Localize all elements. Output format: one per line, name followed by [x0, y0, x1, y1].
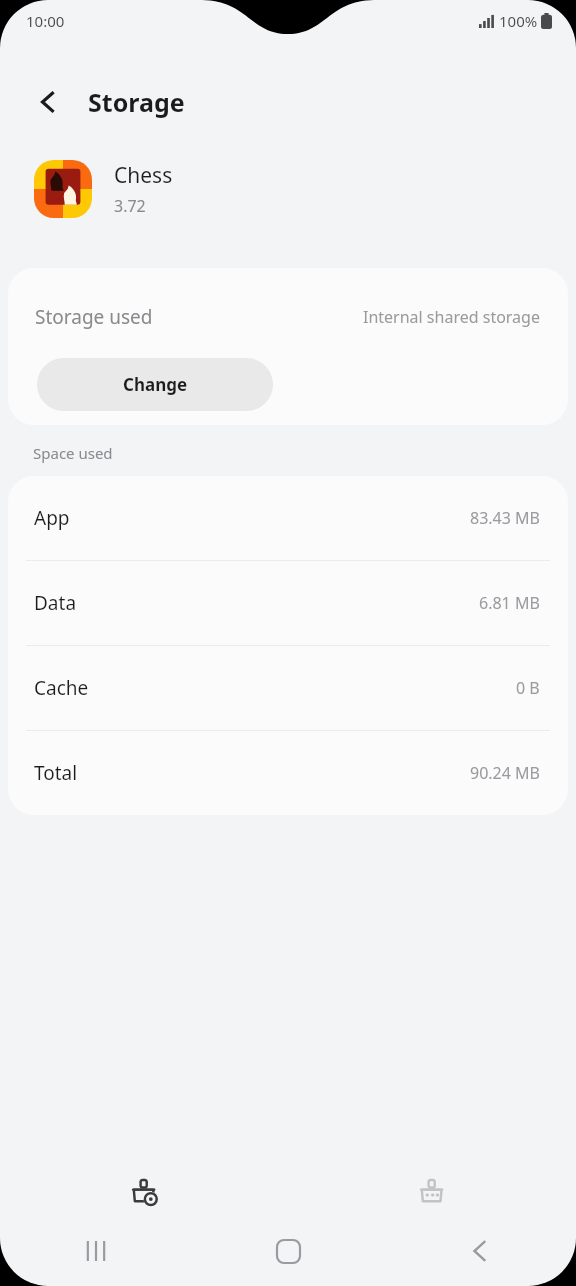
staticText: 100% [499, 11, 538, 31]
staticText: Cache [34, 675, 89, 701]
staticText: 90.24 MB [470, 762, 540, 784]
button[interactable]: Recents [0, 1216, 192, 1286]
button[interactable]: Cache [8, 646, 568, 730]
button[interactable]: Back [384, 1216, 576, 1286]
staticText: Total [34, 760, 78, 786]
button[interactable]: Home [192, 1216, 384, 1286]
staticText: Data [34, 590, 77, 616]
staticText: 0 B [516, 677, 540, 699]
button[interactable]: Clear data [0, 1176, 288, 1224]
button[interactable]: Data [8, 561, 568, 645]
staticText: Internal shared storage [363, 306, 540, 328]
staticText: Chess [114, 161, 173, 190]
button[interactable]: Change [37, 358, 273, 411]
staticText: 83.43 MB [470, 507, 540, 529]
staticText: Storage used [35, 304, 153, 330]
staticText: Storage [88, 85, 185, 119]
button[interactable]: Back [26, 80, 70, 124]
button[interactable]: Total [8, 731, 568, 815]
staticText: Change [123, 373, 188, 396]
staticText: 3.72 [114, 195, 146, 217]
staticText: 10:00 [26, 11, 65, 31]
staticText: Space used [33, 443, 113, 463]
button[interactable]: Clear cache [288, 1176, 576, 1224]
staticText: 6.81 MB [479, 592, 540, 614]
button[interactable]: App [8, 476, 568, 560]
staticText: App [34, 505, 70, 531]
